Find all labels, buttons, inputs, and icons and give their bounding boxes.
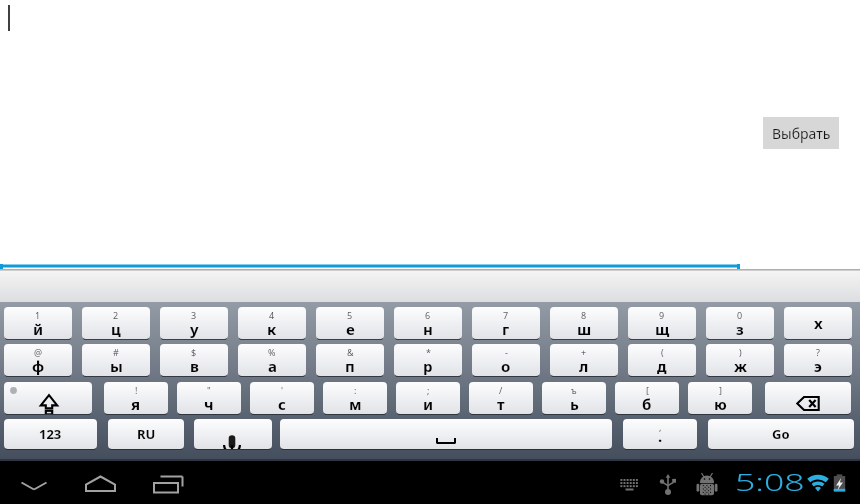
button[interactable]: 8 (550, 307, 618, 341)
staticText: 1 (35, 309, 41, 321)
button[interactable]: 1 (4, 307, 72, 341)
button[interactable]: [ (615, 382, 679, 416)
button[interactable]: ] (688, 382, 752, 416)
staticText: + (581, 346, 587, 358)
button[interactable]: $ (160, 344, 228, 378)
staticText: ю (714, 394, 727, 414)
button[interactable]: * (394, 344, 462, 378)
staticText: ч (204, 394, 214, 414)
staticText: б (642, 394, 652, 414)
button[interactable]: 7 (472, 307, 540, 341)
staticText: щ (655, 319, 670, 339)
staticText: г (502, 319, 510, 339)
button[interactable]: % (238, 344, 306, 378)
button[interactable]: Hide keyboard (10, 461, 58, 504)
staticText: ш (577, 319, 592, 339)
staticText: ] (719, 384, 722, 396)
staticText: я (131, 394, 141, 414)
button[interactable]: 5 (316, 307, 384, 341)
staticText: ; (427, 384, 430, 396)
button[interactable]: ; (396, 382, 460, 416)
button[interactable]: Выбрать (763, 117, 839, 149)
staticText: ( (661, 346, 664, 358)
staticText: л (579, 356, 589, 376)
staticText: $ (191, 346, 197, 358)
button[interactable]: Home (76, 461, 124, 504)
button[interactable]: RU (108, 419, 184, 451)
staticText: / (499, 384, 503, 396)
staticText: т (497, 394, 505, 414)
staticText: е (346, 319, 355, 339)
button[interactable]: ' (250, 382, 314, 416)
staticText: з (736, 319, 744, 339)
staticText: у (190, 319, 199, 339)
staticText: @ (34, 346, 43, 358)
button[interactable]: , (623, 419, 697, 451)
staticText: р (423, 356, 433, 376)
staticText: ' (281, 384, 284, 396)
staticText: Go (772, 425, 790, 443)
staticText: о (501, 356, 511, 376)
button[interactable]: ( (628, 344, 696, 378)
staticText: н (423, 319, 433, 339)
button[interactable]: ? (784, 344, 852, 378)
staticText: & (347, 346, 354, 358)
staticText: Выбрать (772, 124, 831, 143)
staticText: 9 (659, 309, 665, 321)
staticText: п (345, 356, 355, 376)
button[interactable]: - (472, 344, 540, 378)
button[interactable]: 3 (160, 307, 228, 341)
staticText: 5 (347, 309, 353, 321)
button[interactable]: # (82, 344, 150, 378)
staticText: ъ (571, 384, 577, 396)
staticText: с (278, 394, 286, 414)
staticText: RU (137, 425, 156, 443)
staticText: й (33, 319, 44, 339)
staticText: х (814, 313, 823, 333)
staticText: ) (739, 346, 742, 358)
button[interactable]: 123 (4, 419, 97, 451)
button[interactable]: 6 (394, 307, 462, 341)
staticText: 0 (737, 309, 743, 321)
staticText: , (659, 421, 662, 433)
button[interactable]: Backspace (765, 382, 851, 416)
staticText: * (426, 346, 431, 358)
staticText: и (423, 394, 434, 414)
staticText: : (354, 384, 357, 396)
button[interactable]: : (323, 382, 387, 416)
button[interactable]: х (784, 307, 852, 341)
staticText: 2 (113, 309, 119, 321)
button[interactable]: Space (280, 419, 612, 451)
staticText: в (190, 356, 199, 376)
staticText: ф (32, 356, 45, 376)
button[interactable]: ) (706, 344, 774, 378)
button[interactable]: Shift (4, 382, 92, 416)
staticText: ж (734, 356, 747, 376)
staticText: - (505, 346, 508, 358)
button[interactable]: ъ (542, 382, 606, 416)
button[interactable]: Voice input (194, 419, 272, 451)
staticText: 4 (269, 309, 275, 321)
staticText: м (349, 394, 362, 414)
staticText: 5:08 (735, 465, 805, 498)
button[interactable]: 2 (82, 307, 150, 341)
button[interactable]: + (550, 344, 618, 378)
staticText: . (658, 426, 663, 446)
button[interactable]: ! (104, 382, 168, 416)
staticText: к (267, 319, 277, 339)
button[interactable]: 9 (628, 307, 696, 341)
button[interactable]: Recent apps (142, 461, 190, 504)
button[interactable]: 0 (706, 307, 774, 341)
button[interactable]: / (469, 382, 533, 416)
button[interactable]: " (177, 382, 241, 416)
staticText: ? (816, 346, 820, 358)
staticText: д (657, 356, 667, 376)
button[interactable]: Go (708, 419, 854, 451)
staticText: ц (111, 319, 121, 339)
staticText: 123 (39, 425, 62, 443)
staticText: 8 (581, 309, 587, 321)
button[interactable]: 4 (238, 307, 306, 341)
staticText: % (268, 346, 276, 358)
button[interactable]: & (316, 344, 384, 378)
button[interactable]: @ (4, 344, 72, 378)
